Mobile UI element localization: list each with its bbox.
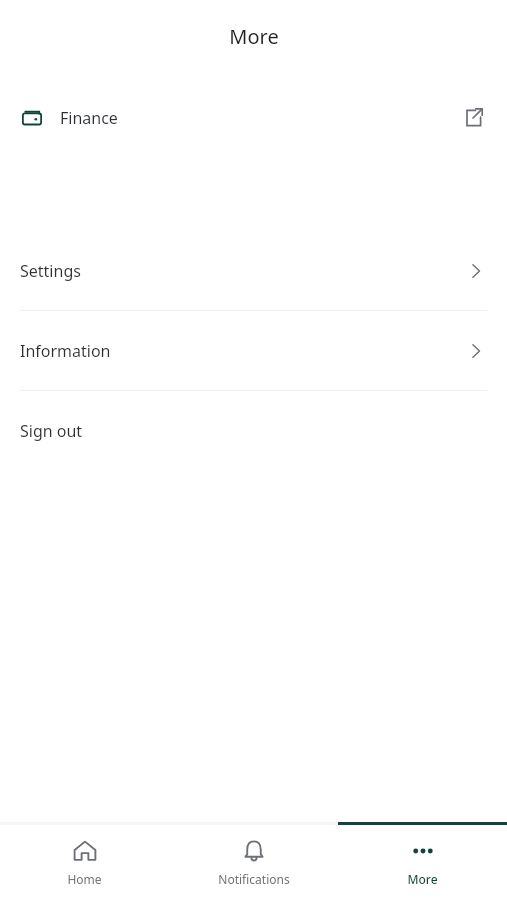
- staticText: More: [229, 23, 279, 50]
- button[interactable]: More: [338, 825, 507, 900]
- staticText: Finance: [60, 107, 118, 129]
- staticText: Information: [20, 340, 111, 362]
- other: Open Finance externally: [459, 104, 487, 132]
- button[interactable]: Home: [0, 825, 169, 900]
- staticText: Settings: [20, 260, 81, 282]
- button[interactable]: Finance: [0, 91, 507, 145]
- button[interactable]: Settings: [0, 231, 507, 310]
- staticText: More: [407, 871, 438, 887]
- staticText: Notifications: [218, 871, 290, 887]
- staticText: Sign out: [20, 420, 83, 442]
- button[interactable]: Information: [0, 311, 507, 390]
- button[interactable]: Sign out: [0, 391, 507, 470]
- staticText: Home: [67, 871, 102, 887]
- button[interactable]: Notifications: [169, 825, 338, 900]
